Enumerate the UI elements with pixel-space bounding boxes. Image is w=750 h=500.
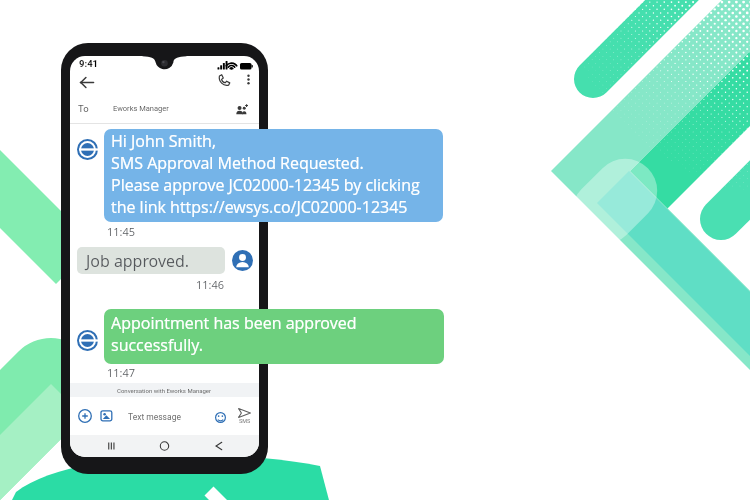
staticText: Appointment has been approved (111, 312, 357, 334)
button[interactable]: Back (72, 68, 100, 96)
button[interactable]: Appointment has been approved (104, 309, 444, 364)
staticText: 11:46 (196, 277, 225, 292)
button[interactable]: Add recipients (229, 98, 253, 122)
staticText: To (78, 103, 89, 114)
staticText: Please approve JC02000-12345 by clicking (111, 174, 420, 196)
staticText: successfully. (111, 334, 203, 356)
staticText: Text message (128, 412, 181, 422)
staticText: 11:45 (107, 224, 136, 239)
staticText: 11:47 (107, 365, 136, 380)
button[interactable]: Hi John Smith, (104, 129, 443, 222)
button[interactable]: Gallery (96, 405, 118, 427)
staticText: Conversation with Eworks Manager (117, 387, 212, 394)
button[interactable]: Add attachment (74, 405, 96, 427)
button[interactable]: Send SMS (231, 403, 257, 429)
staticText: the link https://ewsys.co/JC02000-12345 (111, 196, 408, 218)
staticText: 9:41 (79, 58, 99, 69)
staticText: Job approved. (86, 250, 190, 272)
button[interactable]: Job approved. (77, 247, 225, 274)
button[interactable]: More options (237, 68, 259, 90)
button[interactable]: Call (212, 68, 236, 92)
staticText: Eworks Manager (113, 104, 169, 113)
staticText: SMS (239, 418, 251, 424)
staticText: Hi John Smith, (111, 130, 216, 152)
button[interactable]: Text message (120, 405, 231, 428)
staticText: SMS Approval Method Requested. (111, 152, 364, 174)
